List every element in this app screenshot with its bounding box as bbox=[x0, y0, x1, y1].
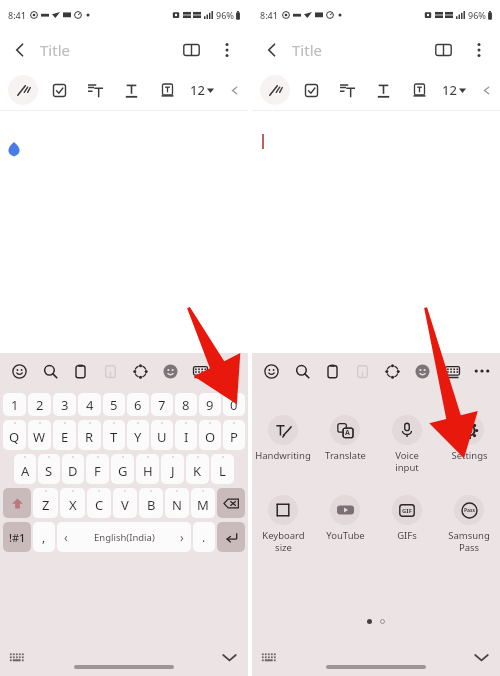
button[interactable]: One-handed keyboard bbox=[258, 647, 278, 667]
button[interactable]: S bbox=[38, 454, 60, 484]
button[interactable]: 9 bbox=[199, 393, 221, 416]
button[interactable]: U bbox=[151, 420, 173, 450]
staticText: Samsung Pass bbox=[448, 529, 490, 553]
button[interactable]: Stickers bbox=[157, 358, 183, 384]
button[interactable]: Paragraph bbox=[80, 75, 110, 105]
button[interactable]: P bbox=[223, 420, 245, 450]
button[interactable]: Text format bbox=[116, 75, 146, 105]
button[interactable]: Q bbox=[3, 420, 26, 450]
button[interactable]: 2 bbox=[28, 393, 51, 416]
staticText: Settings bbox=[451, 449, 488, 462]
button[interactable]: Checklist bbox=[44, 75, 74, 105]
button[interactable]: ‹ bbox=[57, 522, 191, 552]
button[interactable]: 12 bbox=[188, 81, 216, 99]
button[interactable]: E bbox=[53, 420, 76, 450]
button[interactable]: A bbox=[314, 415, 376, 462]
button[interactable]: W bbox=[28, 420, 51, 450]
button[interactable]: Z bbox=[33, 488, 58, 518]
staticText: Voice input bbox=[395, 449, 419, 473]
button[interactable]: T bbox=[103, 420, 125, 450]
button[interactable]: L bbox=[211, 454, 234, 484]
button[interactable]: C bbox=[87, 488, 111, 518]
button[interactable]: Hide keyboard bbox=[470, 646, 492, 668]
button[interactable]: D bbox=[62, 454, 84, 484]
button[interactable]: Collapse toolbar bbox=[474, 78, 498, 102]
button[interactable]: One-handed keyboard bbox=[6, 647, 26, 667]
staticText: F bbox=[94, 462, 101, 480]
button[interactable]: , bbox=[33, 522, 55, 552]
button[interactable]: Checklist bbox=[296, 75, 326, 105]
button[interactable]: G bbox=[111, 454, 134, 484]
button[interactable]: Split keyboard bbox=[349, 358, 375, 384]
button[interactable]: Pen bbox=[260, 75, 290, 105]
button[interactable]: 1 bbox=[3, 393, 26, 416]
button[interactable]: 5 bbox=[103, 393, 125, 416]
button[interactable]: More options bbox=[210, 33, 244, 67]
button[interactable]: Y bbox=[127, 420, 149, 450]
button[interactable]: Reading mode bbox=[424, 31, 462, 69]
staticText: 12 bbox=[442, 81, 457, 99]
button[interactable]: Move keyboard bbox=[127, 358, 153, 384]
button[interactable]: Move keyboard bbox=[379, 358, 405, 384]
button[interactable]: Emoji bbox=[6, 358, 32, 384]
button[interactable]: Clipboard bbox=[319, 358, 345, 384]
staticText: X bbox=[69, 496, 77, 514]
button[interactable]: Handwriting bbox=[252, 415, 314, 462]
button[interactable]: J bbox=[161, 454, 184, 484]
button[interactable]: YouTube bbox=[314, 495, 376, 542]
button[interactable]: 12 bbox=[440, 81, 468, 99]
staticText: D bbox=[68, 462, 78, 480]
button[interactable]: . bbox=[193, 522, 215, 552]
button[interactable]: More keyboard options bbox=[469, 358, 495, 384]
button[interactable]: Back bbox=[252, 30, 292, 70]
staticText: › bbox=[180, 529, 184, 545]
button[interactable]: Clipboard bbox=[67, 358, 93, 384]
button[interactable]: Search bbox=[289, 358, 315, 384]
button[interactable]: Keyboard size bbox=[252, 495, 314, 553]
button[interactable]: K bbox=[186, 454, 209, 484]
button[interactable]: O bbox=[199, 420, 221, 450]
button[interactable]: Text format bbox=[368, 75, 398, 105]
button[interactable]: F bbox=[86, 454, 109, 484]
button[interactable]: B bbox=[139, 488, 163, 518]
button[interactable]: Paragraph bbox=[332, 75, 362, 105]
button[interactable]: Voice input bbox=[376, 415, 438, 473]
button[interactable]: Pass bbox=[438, 495, 500, 553]
button[interactable]: Emoji bbox=[258, 358, 284, 384]
button[interactable]: More options bbox=[462, 33, 496, 67]
button[interactable]: N bbox=[165, 488, 189, 518]
button[interactable]: GIF bbox=[376, 495, 438, 542]
button[interactable]: Text box bbox=[404, 75, 434, 105]
button[interactable]: Keyboard modes bbox=[439, 358, 465, 384]
button[interactable]: !#1 bbox=[3, 522, 31, 552]
button[interactable]: Hide keyboard bbox=[218, 646, 240, 668]
button[interactable]: Shift bbox=[3, 488, 31, 518]
button[interactable]: Keyboard modes bbox=[187, 358, 213, 384]
staticText: 8:41 bbox=[260, 9, 278, 21]
button[interactable]: Settings bbox=[438, 415, 500, 462]
button[interactable]: Text box bbox=[152, 75, 182, 105]
button[interactable]: I bbox=[175, 420, 197, 450]
button[interactable]: M bbox=[191, 488, 215, 518]
button[interactable]: Reading mode bbox=[172, 31, 210, 69]
button[interactable]: Search bbox=[37, 358, 63, 384]
button[interactable]: Enter bbox=[217, 522, 245, 552]
button[interactable]: 6 bbox=[127, 393, 149, 416]
button[interactable]: Stickers bbox=[409, 358, 435, 384]
button[interactable]: 3 bbox=[53, 393, 76, 416]
button[interactable]: Pen bbox=[8, 75, 38, 105]
button[interactable]: A bbox=[14, 454, 36, 484]
button[interactable]: Collapse toolbar bbox=[222, 78, 246, 102]
button[interactable]: 4 bbox=[78, 393, 101, 416]
button[interactable]: 7 bbox=[151, 393, 173, 416]
button[interactable]: X bbox=[60, 488, 85, 518]
button[interactable]: More keyboard options bbox=[217, 358, 243, 384]
button[interactable]: Back bbox=[0, 30, 40, 70]
button[interactable]: Backspace bbox=[217, 488, 245, 518]
button[interactable]: V bbox=[113, 488, 137, 518]
button[interactable]: 8 bbox=[175, 393, 197, 416]
button[interactable]: 0 bbox=[223, 393, 245, 416]
button[interactable]: Split keyboard bbox=[97, 358, 123, 384]
button[interactable]: H bbox=[136, 454, 159, 484]
button[interactable]: R bbox=[78, 420, 101, 450]
